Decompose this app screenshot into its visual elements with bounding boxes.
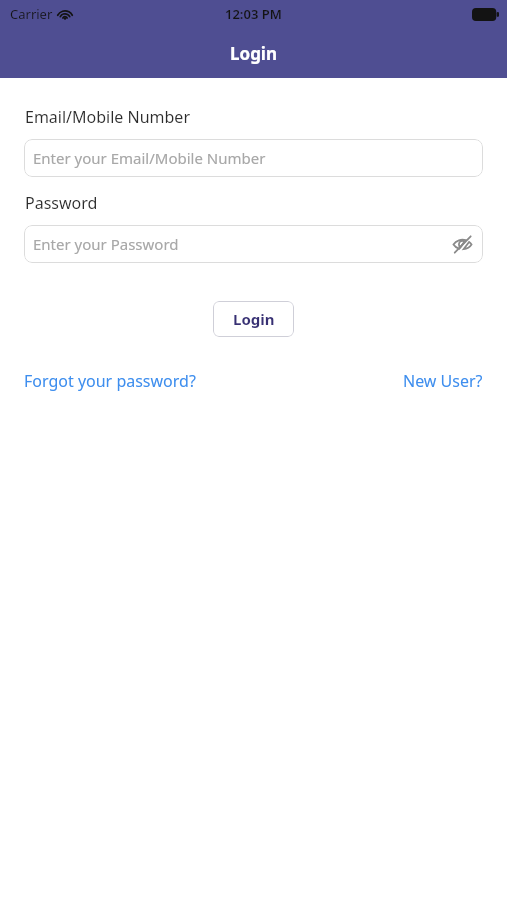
button[interactable]: Show password: [450, 232, 474, 256]
button[interactable]: Forgot your password?: [24, 368, 196, 394]
staticText: Enter your Password: [33, 234, 179, 254]
staticText: Login: [230, 42, 278, 65]
staticText: Carrier: [10, 5, 53, 23]
button[interactable]: Login: [213, 301, 294, 337]
staticText: 12:03 PM: [225, 5, 282, 23]
staticText: Login: [233, 309, 275, 329]
button[interactable]: Enter your Email/Mobile Number: [24, 139, 483, 177]
staticText: Forgot your password?: [24, 370, 196, 392]
button[interactable]: Enter your Password: [24, 225, 483, 263]
staticText: Password: [25, 192, 98, 214]
staticText: Email/Mobile Number: [25, 106, 190, 128]
staticText: New User?: [403, 370, 483, 392]
button[interactable]: New User?: [403, 368, 483, 394]
staticText: Enter your Email/Mobile Number: [33, 148, 266, 168]
